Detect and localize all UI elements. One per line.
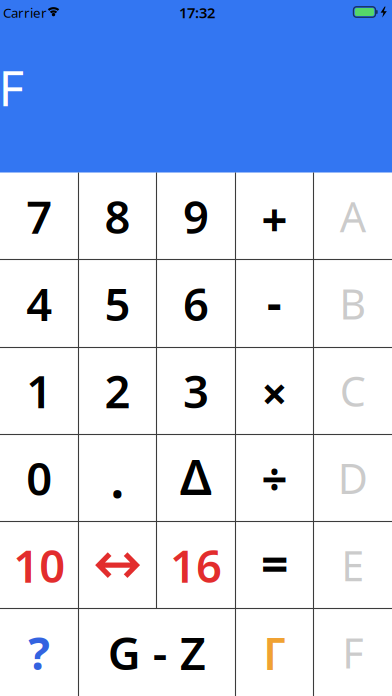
button[interactable]: F: [314, 609, 392, 696]
button[interactable]: 10: [0, 521, 78, 609]
button[interactable]: D: [314, 434, 392, 521]
staticText: C: [340, 363, 366, 418]
staticText: G - Z: [108, 622, 206, 682]
staticText: F: [0, 54, 24, 120]
staticText: 4: [26, 273, 52, 333]
button[interactable]: 2: [78, 347, 157, 434]
staticText: 7: [26, 186, 52, 246]
staticText: 2: [105, 360, 131, 421]
staticText: 3: [183, 360, 209, 421]
button[interactable]: =: [235, 519, 314, 607]
staticText: 6: [183, 273, 209, 333]
button[interactable]: ÷: [235, 434, 314, 521]
staticText: Carrier: [3, 4, 47, 21]
staticText: ?: [28, 622, 50, 682]
button[interactable]: 3: [157, 347, 235, 434]
staticText: ×: [261, 362, 287, 423]
staticText: 1: [26, 360, 52, 421]
button[interactable]: 9: [157, 172, 235, 260]
staticText: 16: [170, 535, 222, 595]
staticText: B: [339, 276, 366, 331]
button[interactable]: .: [78, 434, 157, 521]
staticText: 9: [183, 186, 209, 246]
button[interactable]: [78, 521, 157, 609]
staticText: =: [261, 531, 288, 595]
button[interactable]: 16: [157, 521, 235, 609]
staticText: 5: [105, 273, 131, 333]
staticText: -: [267, 271, 282, 331]
button[interactable]: B: [314, 260, 392, 347]
button[interactable]: 4: [0, 260, 78, 347]
staticText: +: [261, 188, 287, 249]
staticText: 10: [13, 535, 65, 595]
button[interactable]: -: [235, 258, 314, 345]
button[interactable]: ×: [235, 349, 314, 436]
staticText: 0: [26, 448, 52, 508]
button[interactable]: E: [314, 521, 392, 609]
staticText: ÷: [261, 448, 287, 508]
button[interactable]: 5: [78, 260, 157, 347]
button[interactable]: Γ: [235, 609, 314, 696]
staticText: F: [342, 625, 363, 680]
button[interactable]: 0: [0, 434, 78, 521]
staticText: A: [340, 189, 366, 244]
staticText: Δ: [180, 444, 212, 508]
button[interactable]: ?: [0, 609, 78, 696]
button[interactable]: Δ: [157, 433, 235, 520]
staticText: 17:32: [179, 3, 215, 22]
button[interactable]: 7: [0, 172, 78, 260]
staticText: E: [341, 538, 364, 593]
button[interactable]: +: [235, 175, 314, 262]
button[interactable]: C: [314, 347, 392, 434]
button[interactable]: 8: [78, 172, 157, 260]
button[interactable]: 1: [0, 347, 78, 434]
staticText: Γ: [263, 622, 286, 682]
button[interactable]: A: [314, 172, 392, 260]
button[interactable]: G - Z: [78, 609, 235, 696]
staticText: .: [110, 442, 125, 513]
staticText: D: [338, 450, 368, 505]
staticText: 8: [105, 186, 131, 246]
button[interactable]: 6: [157, 260, 235, 347]
